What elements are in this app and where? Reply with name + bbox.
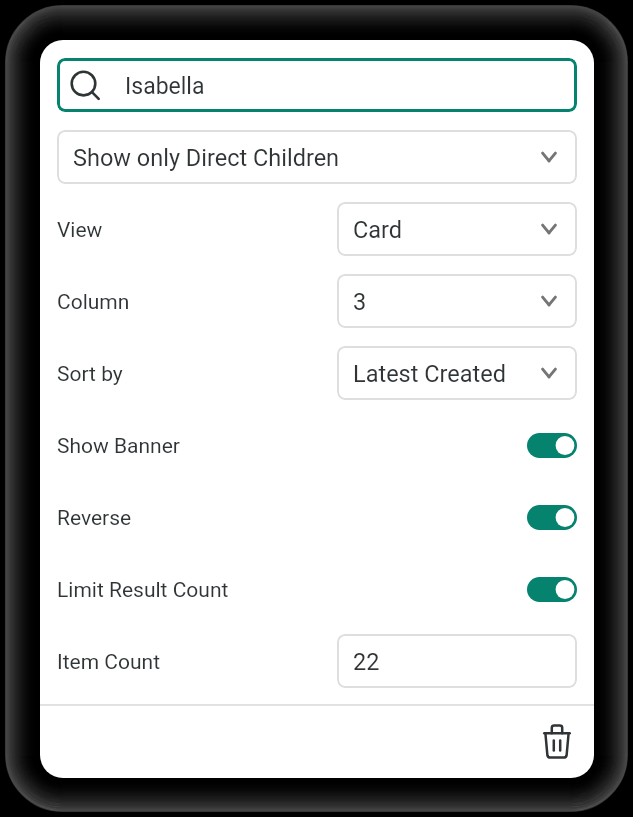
button[interactable]: Delete	[535, 720, 579, 764]
button[interactable]: Show only Direct Children	[57, 130, 577, 184]
staticText: 22	[353, 648, 380, 676]
staticText: Show Banner	[57, 434, 180, 459]
staticText: Column	[57, 290, 130, 315]
button[interactable]: Latest Created	[337, 346, 577, 400]
button[interactable]: Search	[57, 58, 577, 112]
button[interactable]: Reverse	[527, 505, 577, 530]
staticText: Limit Result Count	[57, 578, 229, 603]
button[interactable]: Item Count	[57, 634, 577, 688]
button[interactable]: Column	[57, 274, 577, 328]
button[interactable]: 22	[337, 634, 577, 688]
button[interactable]: Show Banner	[57, 418, 577, 472]
staticText: Latest Created	[353, 360, 506, 388]
staticText: Sort by	[57, 362, 123, 387]
button[interactable]: Show Banner	[527, 433, 577, 458]
staticText: Isabella	[125, 73, 205, 100]
button[interactable]: Limit Result Count	[57, 562, 577, 616]
staticText: Item Count	[57, 650, 161, 675]
button[interactable]: View	[57, 202, 577, 256]
button[interactable]: Sort by	[57, 346, 577, 400]
staticText: Card	[353, 216, 403, 244]
staticText: 3	[353, 288, 367, 316]
button[interactable]: Reverse	[57, 490, 577, 544]
button[interactable]: 3	[337, 274, 577, 328]
staticText: View	[57, 218, 103, 243]
staticText: Show only Direct Children	[73, 144, 340, 172]
button[interactable]: Card	[337, 202, 577, 256]
staticText: Reverse	[57, 506, 132, 531]
button[interactable]: Limit Result Count	[527, 577, 577, 602]
